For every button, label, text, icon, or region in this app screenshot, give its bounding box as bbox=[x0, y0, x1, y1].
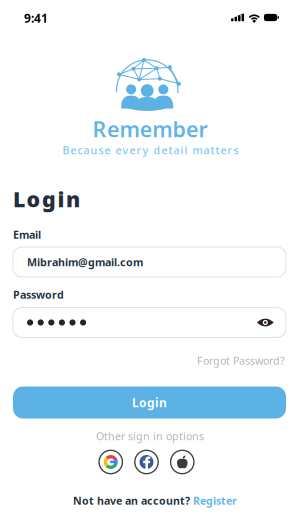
staticText: Mibrahim@gmail.com bbox=[27, 255, 143, 269]
button[interactable]: Register bbox=[193, 493, 237, 508]
staticText: Remember bbox=[93, 115, 207, 143]
staticText: Forgot Password? bbox=[197, 353, 285, 368]
button[interactable] bbox=[13, 307, 286, 337]
staticText: Password bbox=[13, 287, 64, 302]
staticText: Because every detail matters bbox=[62, 143, 238, 157]
button[interactable]: Mibrahim@gmail.com bbox=[13, 247, 286, 277]
button[interactable]: Forgot Password? bbox=[165, 353, 285, 367]
staticText: 9:41 bbox=[24, 10, 48, 26]
button[interactable]: Login bbox=[13, 386, 286, 418]
button[interactable]: Sign in with Google bbox=[99, 450, 123, 474]
button[interactable]: Sign in with Apple bbox=[170, 450, 194, 474]
staticText: Other sign in options bbox=[96, 429, 204, 443]
staticText: Login bbox=[132, 394, 167, 410]
staticText: Not have an account? bbox=[73, 493, 190, 508]
button[interactable]: Sign in with Facebook bbox=[134, 450, 158, 474]
staticText: Email bbox=[13, 227, 41, 242]
staticText: Register bbox=[193, 493, 237, 508]
staticText: Login bbox=[13, 185, 80, 213]
